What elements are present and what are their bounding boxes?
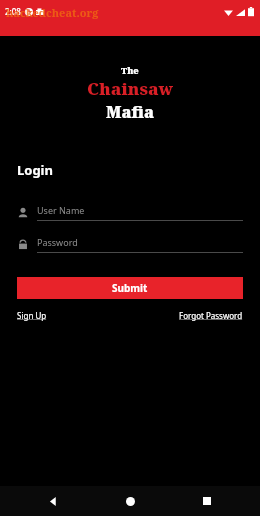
staticText: Sign Up <box>17 310 47 321</box>
other: Password <box>17 239 29 251</box>
staticText: Password <box>37 236 78 248</box>
staticText: Forgot Password <box>179 310 243 321</box>
button[interactable]: Sign Up <box>17 310 47 321</box>
button[interactable]: Password <box>17 236 243 253</box>
staticText: Mafia <box>106 101 155 123</box>
other: User Name <box>17 207 29 219</box>
staticText: hackedcheat.org <box>6 5 99 20</box>
staticText: Login <box>17 161 53 179</box>
button[interactable]: Forgot Password <box>179 310 243 321</box>
staticText: Submit <box>112 281 148 295</box>
staticText: 2:08 <box>5 6 21 17</box>
button[interactable]: Back <box>42 490 64 512</box>
staticText: The <box>121 64 139 76</box>
button[interactable]: Recent apps <box>196 490 218 512</box>
staticText: User Name <box>37 204 85 216</box>
staticText: Chainsaw <box>87 77 174 100</box>
button[interactable]: Home <box>119 490 141 512</box>
button[interactable]: Submit <box>17 277 243 299</box>
button[interactable]: User Name <box>17 204 243 221</box>
